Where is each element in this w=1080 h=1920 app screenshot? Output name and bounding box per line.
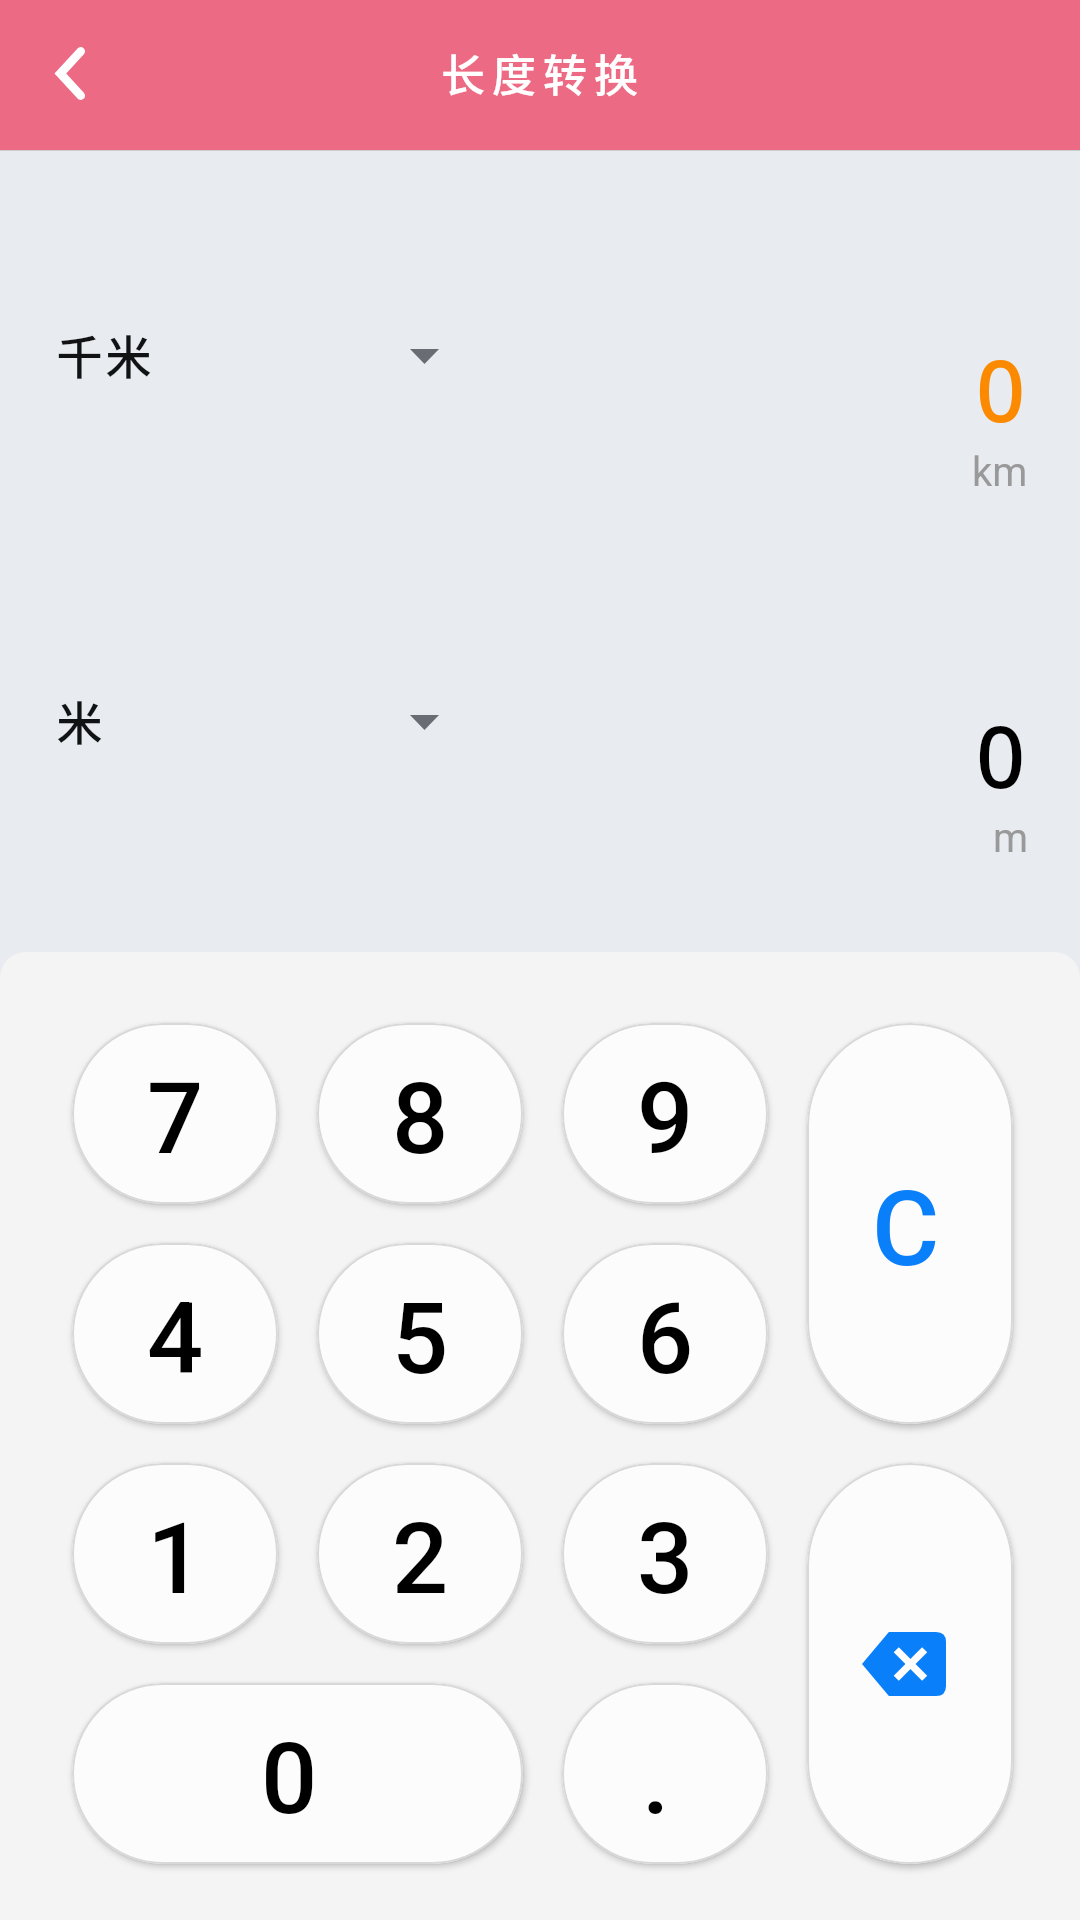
button[interactable]: 4 <box>72 1243 278 1424</box>
staticText: . <box>642 1721 670 1837</box>
staticText: 9 <box>637 1061 694 1177</box>
staticText: 1 <box>147 1501 204 1617</box>
staticText: 5 <box>392 1281 449 1397</box>
button[interactable]: 7 <box>72 1023 278 1204</box>
staticText: 长度转换 <box>441 41 645 105</box>
button[interactable]: 6 <box>562 1243 768 1424</box>
button[interactable]: 9 <box>562 1023 768 1204</box>
staticText: 4 <box>147 1281 204 1397</box>
staticText: C <box>872 1169 940 1290</box>
button[interactable]: 2 <box>317 1463 523 1644</box>
button[interactable]: Clear <box>807 1023 1013 1424</box>
button[interactable]: . <box>562 1683 768 1864</box>
staticText: m <box>993 815 1029 862</box>
button[interactable]: 8 <box>317 1023 523 1204</box>
button[interactable]: 0 <box>72 1683 523 1864</box>
button[interactable]: 5 <box>317 1243 523 1424</box>
staticText: 3 <box>637 1501 694 1617</box>
button[interactable]: 千米 <box>47 308 439 400</box>
staticText: km <box>972 449 1028 496</box>
staticText: 7 <box>147 1061 204 1177</box>
button[interactable]: Back <box>25 28 115 118</box>
button[interactable]: 3 <box>562 1463 768 1644</box>
staticText: 0 <box>976 696 1026 813</box>
staticText: 6 <box>637 1281 694 1397</box>
staticText: 8 <box>392 1061 449 1177</box>
staticText: 0 <box>976 330 1026 447</box>
staticText: 米 <box>55 687 104 754</box>
staticText: 千米 <box>55 321 153 388</box>
button[interactable]: 1 <box>72 1463 278 1644</box>
staticText: 0 <box>261 1721 318 1837</box>
button[interactable]: Backspace <box>807 1463 1013 1864</box>
button[interactable]: 米 <box>47 674 439 766</box>
staticText: 2 <box>392 1501 449 1617</box>
